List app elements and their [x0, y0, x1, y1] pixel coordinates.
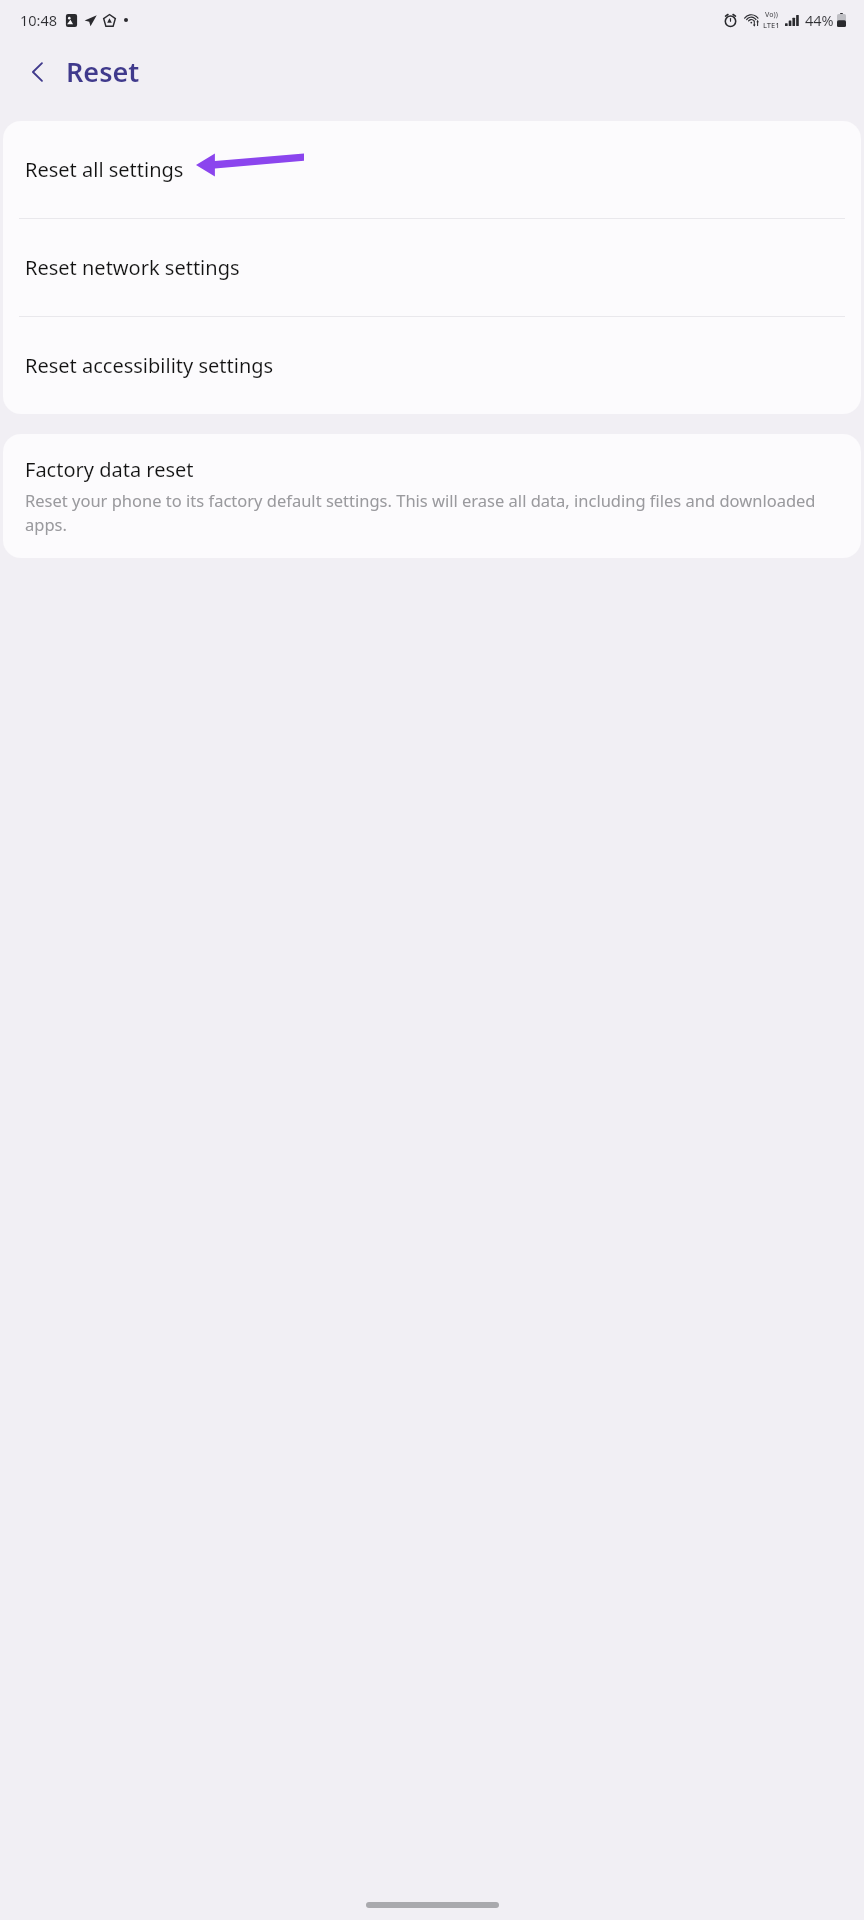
- staticText: Vo)): [765, 10, 778, 20]
- button[interactable]: Back: [16, 50, 60, 94]
- staticText: Reset your phone to its factory default …: [25, 489, 839, 536]
- staticText: Reset: [66, 53, 140, 90]
- staticText: Reset all settings: [25, 156, 184, 183]
- button[interactable]: Reset accessibility settings: [3, 317, 861, 414]
- button[interactable]: Reset all settings: [3, 121, 861, 218]
- button[interactable]: Factory data reset: [3, 434, 861, 558]
- staticText: 44%: [805, 10, 834, 30]
- staticText: Factory data reset: [25, 456, 194, 483]
- button[interactable]: Reset network settings: [3, 219, 861, 316]
- staticText: Reset accessibility settings: [25, 352, 274, 379]
- staticText: Reset network settings: [25, 254, 240, 281]
- staticText: 10:48: [20, 10, 58, 30]
- staticText: LTE1: [763, 20, 780, 30]
